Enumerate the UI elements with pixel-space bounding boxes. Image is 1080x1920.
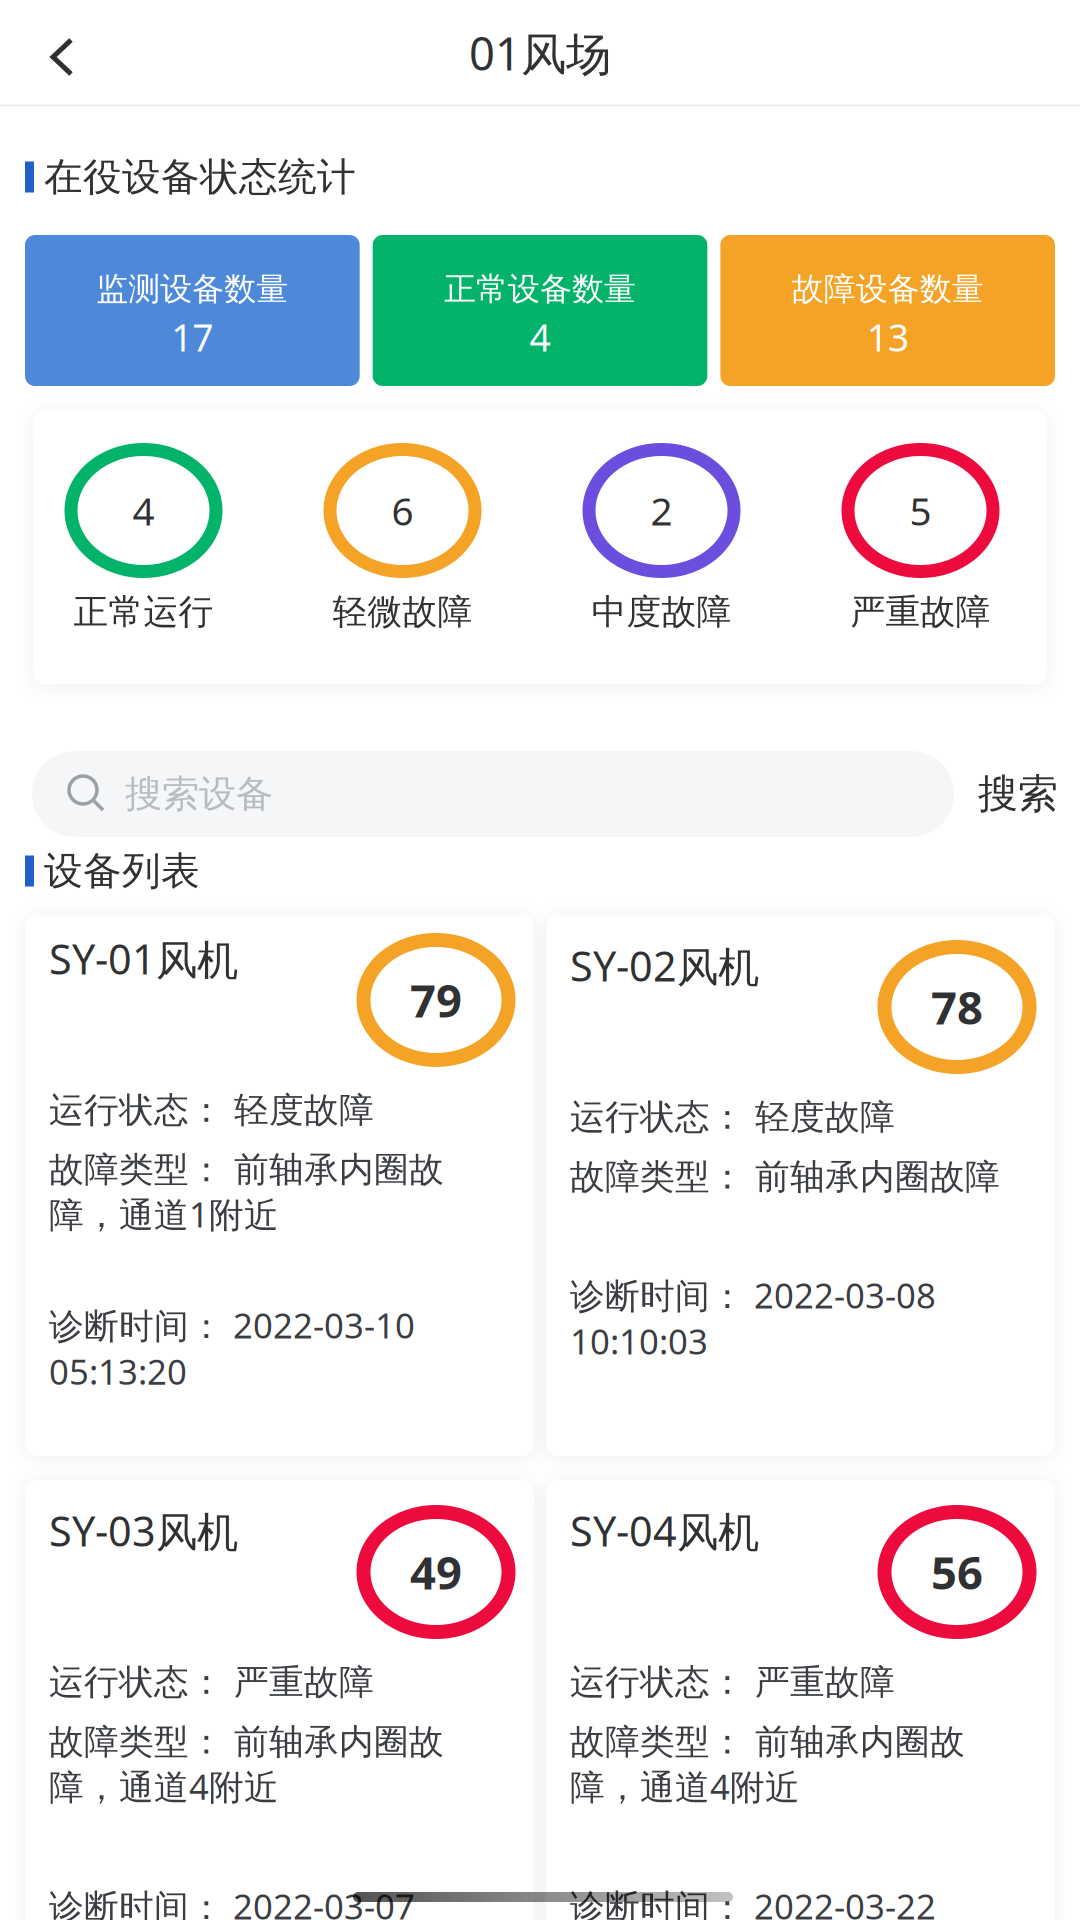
button[interactable]: 78 [546, 915, 1055, 1456]
staticText: 13 [867, 312, 909, 362]
staticText: 17 [171, 312, 213, 362]
staticText: 49 [410, 1542, 462, 1602]
staticText: SY-04风机 [570, 1503, 759, 1558]
button[interactable]: 监测设备数量 [25, 235, 360, 386]
staticText: 6 [391, 485, 413, 536]
staticText: 4 [132, 485, 154, 536]
staticText: 在役设备状态统计 [44, 153, 356, 201]
staticText: 搜索设备 [125, 771, 273, 817]
staticText: SY-01风机 [49, 931, 238, 986]
staticText: 56 [931, 1542, 983, 1602]
staticText: 79 [410, 970, 462, 1030]
button[interactable]: Back [0, 0, 130, 106]
staticText: SY-03风机 [49, 1503, 238, 1558]
staticText: 轻微故障 [332, 591, 472, 633]
button[interactable]: 搜索 [954, 751, 1058, 837]
staticText: SY-02风机 [570, 938, 759, 993]
staticText: 中度故障 [591, 591, 731, 633]
staticText: 故障类型： 前轴承内圈故障，通道4附近 [570, 1721, 965, 1809]
staticText: 诊断时间： 2022-03-07 [49, 1883, 424, 1920]
staticText: 5 [909, 485, 931, 536]
staticText: 01风场 [469, 23, 611, 83]
staticText: 故障类型： 前轴承内圈故障，通道4附近 [49, 1721, 444, 1809]
staticText: 设备列表 [44, 847, 200, 895]
staticText: 搜索 [978, 769, 1058, 818]
staticText: 监测设备数量 [96, 269, 288, 309]
staticText: 78 [931, 977, 983, 1037]
staticText: 诊断时间： 2022-03-22 [570, 1883, 945, 1920]
staticText: 严重故障 [850, 591, 990, 633]
button[interactable]: 正常设备数量 [373, 235, 707, 386]
button[interactable]: 79 [25, 915, 534, 1456]
staticText: 运行状态： 严重故障 [570, 1661, 895, 1704]
staticText: 诊断时间： 2022-03-10 05:13:20 [49, 1302, 415, 1394]
staticText: 正常设备数量 [444, 269, 636, 309]
staticText: 运行状态： 轻度故障 [570, 1096, 895, 1139]
staticText: 运行状态： 轻度故障 [49, 1089, 374, 1131]
staticText: 2 [650, 485, 672, 536]
button[interactable]: 56 [546, 1480, 1055, 1920]
staticText: 诊断时间： 2022-03-08 10:10:03 [570, 1272, 936, 1364]
button[interactable]: 49 [25, 1480, 534, 1920]
button[interactable]: 故障设备数量 [720, 235, 1055, 386]
staticText: 4 [529, 312, 550, 362]
staticText: 故障类型： 前轴承内圈故障，通道1附近 [49, 1148, 444, 1237]
staticText: 故障设备数量 [792, 269, 984, 309]
staticText: 运行状态： 严重故障 [49, 1661, 374, 1704]
staticText: 正常运行 [73, 591, 213, 633]
staticText: 故障类型： 前轴承内圈故障 [570, 1156, 1000, 1198]
